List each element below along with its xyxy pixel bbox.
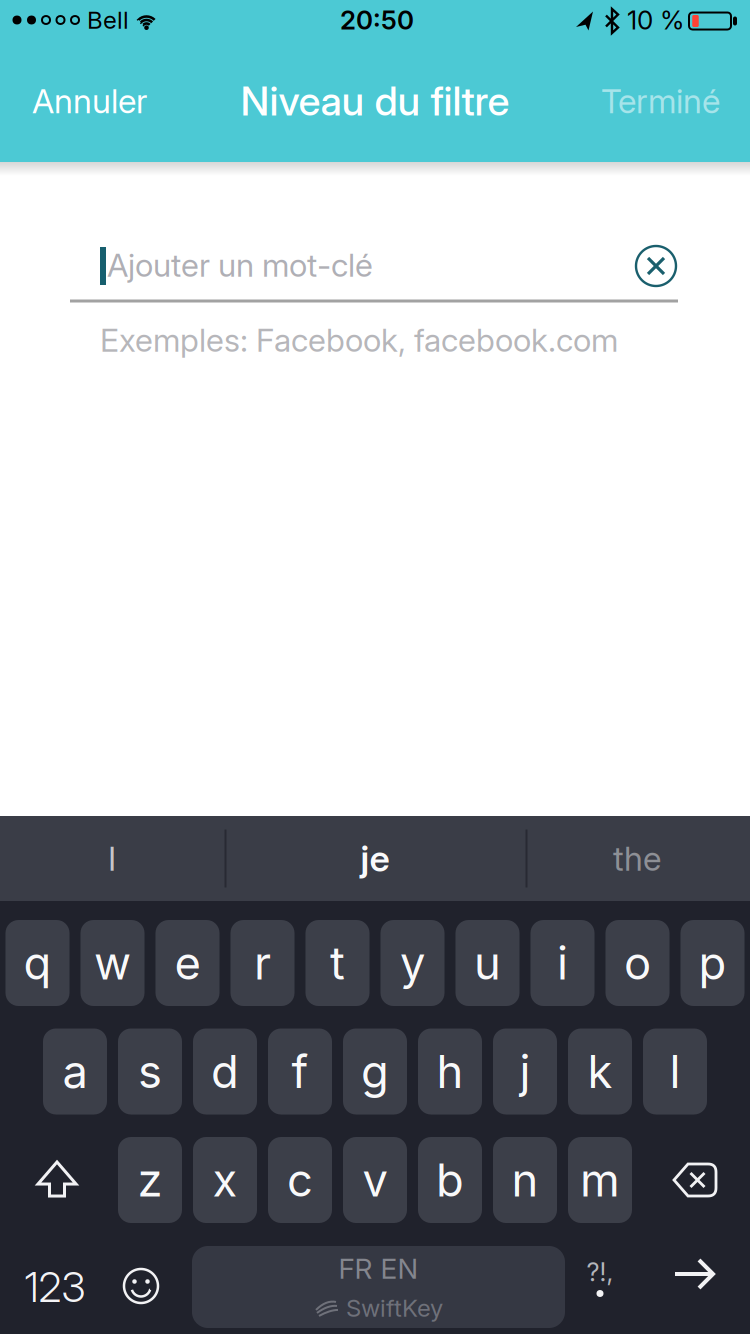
staticText: the xyxy=(613,838,661,879)
button[interactable]: n xyxy=(493,1137,557,1223)
button[interactable]: f xyxy=(268,1028,332,1114)
button[interactable]: z xyxy=(118,1137,182,1223)
button[interactable]: w xyxy=(80,920,144,1006)
staticText: j xyxy=(519,1044,530,1099)
button[interactable]: a xyxy=(43,1028,107,1114)
staticText: d xyxy=(211,1044,239,1099)
staticText: je xyxy=(360,837,389,880)
staticText: SwiftKey xyxy=(346,1293,443,1322)
staticText: o xyxy=(624,936,651,990)
staticText: 20:50 xyxy=(340,4,414,36)
button[interactable]: x xyxy=(193,1137,257,1223)
button[interactable]: I xyxy=(7,816,217,901)
button[interactable]: e xyxy=(155,920,219,1006)
button[interactable]: Émoji xyxy=(111,1245,171,1329)
staticText: Exemples: Facebook, facebook.com xyxy=(100,321,618,359)
staticText: h xyxy=(436,1044,463,1099)
staticText: v xyxy=(362,1153,387,1207)
button[interactable]: o xyxy=(605,920,669,1006)
staticText: a xyxy=(62,1044,87,1099)
button[interactable]: c xyxy=(268,1137,332,1223)
button[interactable]: v xyxy=(343,1137,407,1223)
button[interactable]: Annuler xyxy=(32,81,272,121)
button[interactable]: s xyxy=(118,1028,182,1114)
staticText: r xyxy=(254,936,271,990)
button[interactable]: m xyxy=(568,1137,632,1223)
staticText: 123 xyxy=(24,1262,85,1312)
staticText: i xyxy=(557,936,568,990)
staticText: k xyxy=(587,1044,612,1099)
button[interactable]: 123 xyxy=(15,1245,95,1329)
button[interactable]: je xyxy=(232,816,517,901)
staticText: y xyxy=(400,936,425,990)
staticText: e xyxy=(174,936,200,990)
staticText: Niveau du filtre xyxy=(240,77,509,125)
staticText: Terminé xyxy=(601,81,720,121)
staticText: t xyxy=(330,936,345,990)
staticText: l xyxy=(669,1044,680,1099)
staticText: FR EN xyxy=(338,1251,418,1285)
button[interactable]: Retour xyxy=(652,1239,736,1323)
staticText: q xyxy=(23,936,51,990)
staticText: u xyxy=(474,936,501,990)
button[interactable]: Supprimer xyxy=(652,1137,736,1223)
button[interactable]: Maj xyxy=(19,1137,95,1223)
button[interactable]: q xyxy=(5,920,69,1006)
staticText: ?!, xyxy=(586,1257,613,1287)
staticText: w xyxy=(94,936,131,990)
button[interactable]: u xyxy=(455,920,519,1006)
button[interactable]: p xyxy=(680,920,744,1006)
button[interactable]: y xyxy=(380,920,444,1006)
button[interactable]: b xyxy=(418,1137,482,1223)
button[interactable]: the xyxy=(532,816,742,901)
button[interactable]: Ajouter un mot-clé xyxy=(70,235,678,307)
button[interactable]: j xyxy=(493,1028,557,1114)
staticText: Bell xyxy=(87,5,129,34)
button[interactable]: g xyxy=(343,1028,407,1114)
button[interactable]: ?!, xyxy=(565,1245,635,1329)
staticText: n xyxy=(511,1153,538,1207)
staticText: 10 % xyxy=(627,4,684,36)
button[interactable]: r xyxy=(230,920,294,1006)
staticText: m xyxy=(580,1153,620,1207)
staticText: Annuler xyxy=(32,81,147,121)
staticText: s xyxy=(138,1044,162,1099)
button[interactable]: d xyxy=(193,1028,257,1114)
staticText: I xyxy=(108,838,116,879)
staticText: g xyxy=(361,1044,389,1099)
button[interactable]: k xyxy=(568,1028,632,1114)
button[interactable]: t xyxy=(305,920,369,1006)
button[interactable]: h xyxy=(418,1028,482,1114)
staticText: x xyxy=(212,1153,237,1207)
button[interactable]: Terminé xyxy=(480,81,720,121)
staticText: p xyxy=(698,936,726,990)
button[interactable]: l xyxy=(643,1028,707,1114)
staticText: f xyxy=(291,1044,308,1099)
staticText: c xyxy=(287,1153,313,1207)
staticText: z xyxy=(137,1153,162,1207)
button[interactable]: Espace xyxy=(192,1246,565,1328)
button[interactable]: i xyxy=(530,920,594,1006)
button[interactable]: Effacer le texte xyxy=(628,238,684,294)
staticText: b xyxy=(436,1153,464,1207)
staticText: Ajouter un mot-clé xyxy=(107,246,373,284)
